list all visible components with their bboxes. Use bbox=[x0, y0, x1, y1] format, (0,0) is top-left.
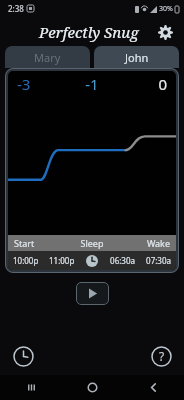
button[interactable]: Sleep time bbox=[85, 254, 99, 268]
button[interactable]: Schedule bbox=[9, 342, 37, 370]
staticText: Mary bbox=[34, 50, 61, 65]
staticText: 0 bbox=[117, 74, 167, 94]
button[interactable]: Settings bbox=[153, 20, 177, 44]
button[interactable]: 10:00p bbox=[13, 255, 49, 266]
button[interactable]: 06:30a bbox=[99, 255, 135, 266]
staticText: Perfectly Snug bbox=[39, 22, 139, 42]
staticText: Sleep bbox=[66, 237, 118, 249]
staticText: Wake bbox=[118, 237, 170, 249]
button[interactable]: 11:00p bbox=[49, 255, 85, 266]
button[interactable]: Back bbox=[123, 375, 184, 400]
button[interactable]: Help bbox=[147, 342, 175, 370]
button[interactable]: Recents bbox=[0, 375, 62, 400]
button[interactable]: Mary bbox=[5, 46, 90, 68]
button[interactable]: Home bbox=[62, 375, 123, 400]
button[interactable]: John bbox=[94, 46, 179, 68]
staticText: 30% bbox=[159, 4, 173, 14]
staticText: Start bbox=[14, 237, 66, 249]
staticText: -1 bbox=[67, 74, 117, 94]
staticText: -3 bbox=[17, 74, 67, 94]
button[interactable]: Play bbox=[76, 282, 109, 305]
staticText: 2:38 bbox=[8, 3, 24, 14]
staticText: ? bbox=[159, 348, 165, 364]
staticText: John bbox=[125, 50, 149, 65]
button[interactable]: 07:30a bbox=[135, 255, 171, 266]
